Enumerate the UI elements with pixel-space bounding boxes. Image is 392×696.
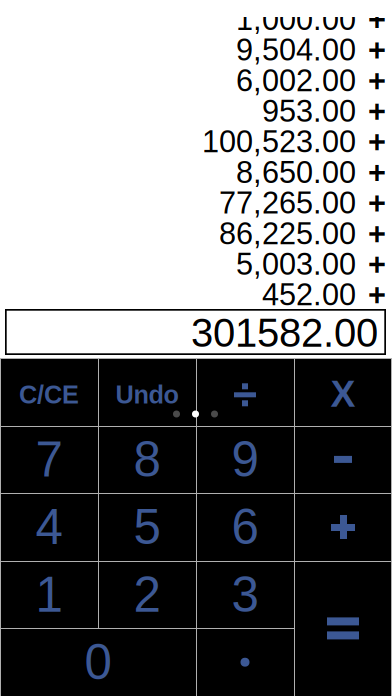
button[interactable]: 8 [98,426,196,493]
button[interactable]: Divide [196,358,294,426]
staticText: X [330,373,355,415]
staticText: 301582.00 [191,311,378,355]
staticText: 1 [35,567,62,622]
staticText: 6,002.00 [236,63,356,98]
button[interactable]: 3 [196,561,294,628]
button[interactable]: Equals [294,561,392,696]
staticText: + [368,125,386,159]
staticText: + [368,247,386,281]
button[interactable]: 0 [0,628,196,696]
button[interactable]: 6 [196,493,294,561]
staticText: + [368,216,386,251]
staticText: + [368,63,386,98]
staticText: 8 [133,432,160,487]
staticText: Undo [115,381,178,409]
staticText: 9 [231,432,258,487]
staticText: 1,000.00 [236,2,356,36]
staticText: C/CE [19,381,79,409]
staticText: 6 [231,499,258,554]
staticText: + [368,278,386,312]
staticText: + [368,2,386,36]
button[interactable]: 5 [98,493,196,561]
staticText: 86,225.00 [219,216,356,251]
staticText: 8,650.00 [236,155,356,189]
button[interactable]: Minus [294,426,392,493]
button[interactable]: X [294,358,392,426]
staticText: 3 [231,567,258,622]
staticText: 5,003.00 [236,247,356,281]
button[interactable]: 4 [0,493,98,561]
staticText: 5 [133,499,160,554]
staticText: 100,523.00 [202,125,356,159]
button[interactable]: 2 [98,561,196,628]
staticText: + [368,186,386,220]
staticText: 77,265.00 [219,186,356,220]
staticText: 2 [133,567,160,622]
button[interactable]: Decimal point [196,628,294,696]
button[interactable]: C/CE [0,358,98,426]
staticText: 4 [35,499,62,554]
staticText: 452.00 [262,278,356,312]
button[interactable]: Undo [98,358,196,426]
button[interactable]: 1 [0,561,98,628]
staticText: + [368,155,386,189]
staticText: 7 [35,432,62,487]
staticText: + [368,33,386,67]
staticText: 9,504.00 [236,33,356,67]
button[interactable]: Plus [294,493,392,561]
button[interactable]: 9 [196,426,294,493]
button[interactable]: 7 [0,426,98,493]
staticText: + [368,94,386,128]
staticText: 953.00 [262,94,356,128]
staticText: 0 [84,635,111,690]
